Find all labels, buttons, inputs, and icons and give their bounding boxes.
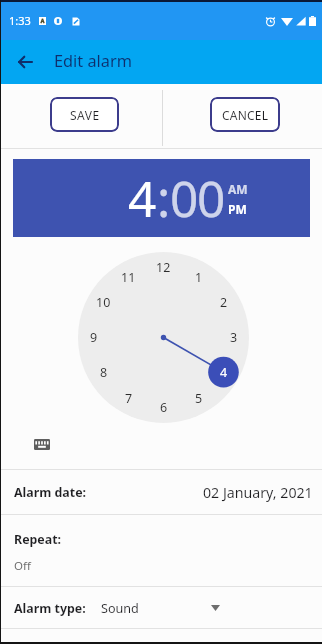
staticText: 4 — [220, 364, 228, 381]
button[interactable]: Repeat: — [0, 515, 322, 586]
staticText: Sound — [101, 600, 139, 617]
staticText: 1 — [195, 269, 203, 286]
staticText: 7 — [125, 390, 133, 407]
button[interactable]: SAVE — [50, 97, 119, 132]
staticText: SAVE — [70, 107, 100, 123]
button[interactable]: Back — [6, 43, 44, 81]
staticText: Repeat: — [14, 531, 62, 548]
staticText: : — [157, 164, 170, 231]
staticText: 1:33 — [9, 13, 31, 28]
staticText: 2 — [220, 294, 228, 311]
button[interactable]: 4 — [13, 159, 310, 237]
staticText: 10 — [96, 294, 111, 311]
staticText: Alarm type: — [14, 600, 86, 617]
button[interactable]: Clock face — [78, 252, 249, 423]
staticText: 00 — [170, 164, 225, 231]
staticText: 11 — [121, 269, 136, 286]
staticText: CANCEL — [222, 107, 269, 123]
button[interactable]: CANCEL — [210, 97, 280, 132]
staticText: 3 — [230, 329, 238, 346]
staticText: Edit alarm — [54, 50, 132, 72]
staticText: 9 — [90, 329, 98, 346]
button[interactable]: Switch to keyboard input — [28, 430, 56, 458]
staticText: PM — [228, 201, 247, 217]
button[interactable]: Alarm type: — [0, 587, 322, 628]
staticText: 5 — [195, 390, 203, 407]
staticText: 8 — [100, 364, 108, 381]
staticText: Off — [14, 558, 31, 574]
staticText: 12 — [156, 259, 171, 276]
staticText: 4 — [128, 164, 157, 231]
staticText: Alarm date: — [14, 484, 87, 501]
staticText: 02 January, 2021 — [203, 483, 313, 502]
staticText: AM — [228, 181, 248, 197]
button[interactable]: Alarm date: — [0, 470, 322, 514]
staticText: 6 — [160, 399, 168, 416]
